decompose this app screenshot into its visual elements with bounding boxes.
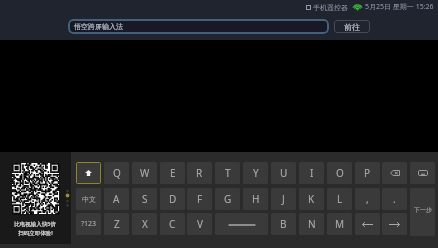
button[interactable]: A xyxy=(104,188,129,210)
staticText: H xyxy=(252,192,260,206)
button[interactable]: V xyxy=(187,213,212,235)
button[interactable]: kb xyxy=(410,162,435,184)
button[interactable]: back xyxy=(382,162,407,184)
staticText: J xyxy=(282,192,285,206)
staticText: W xyxy=(140,166,150,180)
button[interactable]: N xyxy=(299,213,324,235)
button[interactable]: B xyxy=(271,213,296,235)
button[interactable]: right xyxy=(382,213,407,235)
staticText: F xyxy=(197,192,203,206)
staticText: G xyxy=(224,192,232,206)
button[interactable]: . xyxy=(382,188,407,210)
button[interactable]: K xyxy=(299,188,324,210)
button[interactable]: G xyxy=(215,188,240,210)
staticText: S xyxy=(142,192,148,206)
staticText: 扫码立即体验! xyxy=(18,229,53,237)
staticText: 悟空跨屏输入法 xyxy=(74,22,123,31)
staticText: I xyxy=(310,166,314,180)
staticText: V xyxy=(197,217,203,231)
button[interactable]: T xyxy=(215,162,240,184)
button[interactable]: X xyxy=(132,213,157,235)
staticText: . xyxy=(393,192,396,206)
button[interactable]: shift xyxy=(76,162,101,184)
button[interactable]: W xyxy=(132,162,157,184)
staticText: B xyxy=(280,217,287,231)
staticText: E xyxy=(170,166,176,180)
staticText: U xyxy=(280,166,288,180)
staticText: Z xyxy=(114,217,120,231)
button[interactable]: S xyxy=(132,188,157,210)
staticText: O xyxy=(336,166,344,180)
staticText: 比电视输入快5倍 xyxy=(14,220,56,228)
button[interactable]: J xyxy=(271,188,296,210)
button[interactable]: 中文 xyxy=(76,188,101,210)
button[interactable]: R xyxy=(187,162,212,184)
staticText: 中文 xyxy=(82,195,96,204)
button[interactable]: U xyxy=(271,162,296,184)
button[interactable]: ?123 xyxy=(76,213,101,235)
staticText: C xyxy=(169,217,176,231)
button[interactable]: E xyxy=(160,162,185,184)
staticText: A xyxy=(113,192,120,206)
staticText: D xyxy=(169,192,177,206)
staticText: L xyxy=(337,192,343,206)
staticText: 前往 xyxy=(344,22,360,32)
staticText: Y xyxy=(253,166,259,180)
staticText: 下一步 xyxy=(414,206,432,214)
button[interactable]: 下一步 xyxy=(410,188,435,236)
button[interactable]: left xyxy=(355,213,380,235)
staticText: K xyxy=(308,192,315,206)
staticText: 手机遥控器 xyxy=(313,3,348,12)
button[interactable]: space xyxy=(215,213,268,235)
button[interactable]: Y xyxy=(243,162,268,184)
button[interactable]: 悟空跨屏输入法 xyxy=(68,19,329,34)
button[interactable]: Z xyxy=(104,213,129,235)
button[interactable]: P xyxy=(355,162,380,184)
button[interactable]: I xyxy=(299,162,324,184)
button[interactable]: L xyxy=(327,188,352,210)
button[interactable]: M xyxy=(327,213,352,235)
staticText: Q xyxy=(113,166,121,180)
button[interactable]: O xyxy=(327,162,352,184)
staticText: , xyxy=(366,192,369,206)
staticText: T xyxy=(225,166,231,180)
other: WiFi xyxy=(353,3,362,11)
staticText: N xyxy=(308,217,316,231)
staticText: M xyxy=(335,217,345,231)
button[interactable]: , xyxy=(355,188,380,210)
button[interactable]: H xyxy=(243,188,268,210)
other: Phone remote xyxy=(306,5,311,10)
staticText: P xyxy=(364,166,371,180)
button[interactable]: D xyxy=(160,188,185,210)
button[interactable]: 前往 xyxy=(334,20,370,33)
staticText: ?123 xyxy=(81,219,97,229)
staticText: R xyxy=(196,166,203,180)
button[interactable]: F xyxy=(187,188,212,210)
button[interactable]: C xyxy=(160,213,185,235)
staticText: 5月25日 星期一 15:26 xyxy=(365,2,434,12)
staticText: X xyxy=(142,217,148,231)
button[interactable]: Q xyxy=(104,162,129,184)
